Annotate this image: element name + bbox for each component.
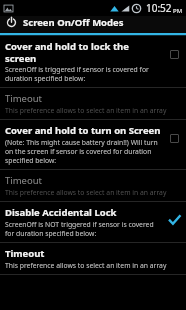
staticText: PM (173, 7, 183, 15)
staticText: ScreenOff is NOT triggered if sensor is … (5, 220, 162, 238)
staticText: This preference allows to select an item… (5, 261, 167, 270)
staticText: ScreenOff is triggered if sensor is cove… (5, 65, 162, 83)
button[interactable]: Timeout (0, 88, 186, 119)
button[interactable]: Cover and hold to lock the screen (0, 36, 186, 87)
button[interactable]: Timeout (0, 170, 186, 201)
staticText: 10:52 (146, 1, 172, 15)
button[interactable]: Cover and hold to turn on Screen (0, 120, 186, 169)
button[interactable]: Unchecked (166, 46, 182, 62)
button[interactable]: Timeout (0, 243, 186, 274)
staticText: Screen On/Off Modes (23, 16, 124, 29)
button[interactable]: Unchecked (166, 130, 182, 146)
staticText: Disable Accidental Lock (5, 206, 117, 219)
staticText: Cover and hold to lock the screen (5, 40, 162, 64)
staticText: This preference allows to select an item… (5, 188, 167, 197)
staticText: This preference allows to select an item… (5, 106, 167, 115)
staticText: (Note: This might cause battery drain!!)… (5, 138, 162, 165)
button[interactable]: Checked (166, 212, 182, 228)
button[interactable]: Disable Accidental Lock (0, 202, 186, 242)
staticText: Timeout (5, 247, 45, 260)
staticText: Timeout (5, 92, 43, 105)
staticText: Cover and hold to turn on Screen (5, 124, 161, 137)
button[interactable]: App icon (5, 16, 18, 29)
staticText: Timeout (5, 174, 43, 187)
